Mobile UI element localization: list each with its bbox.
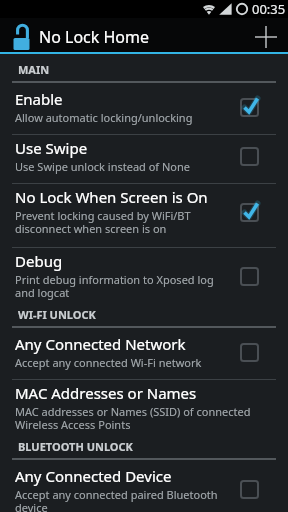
button[interactable] bbox=[244, 21, 288, 52]
button[interactable]: No Lock When Screen is On bbox=[0, 184, 288, 247]
staticText: MAC addresses or Names (SSID) of connect… bbox=[15, 404, 268, 433]
button[interactable]: Any Connected Network bbox=[0, 331, 288, 379]
staticText: MAIN bbox=[18, 62, 50, 77]
staticText: No Lock Home bbox=[39, 26, 149, 48]
staticText: Accept any connected Wi-Fi network bbox=[15, 355, 202, 370]
staticText: Accept any connected paired Bluetooth de… bbox=[15, 487, 232, 512]
staticText: Debug bbox=[15, 251, 63, 271]
staticText: Print debug information to Xposed log an… bbox=[15, 272, 232, 301]
staticText: No Lock When Screen is On bbox=[15, 187, 208, 207]
staticText: Allow automatic locking/unlocking bbox=[15, 110, 193, 125]
button[interactable]: No Lock Home bbox=[0, 18, 288, 52]
button[interactable]: Use Swipe bbox=[0, 135, 288, 183]
staticText: Enable bbox=[15, 89, 63, 109]
staticText: Any Connected Device bbox=[15, 466, 172, 486]
staticText: MAC Addresses or Names bbox=[15, 383, 197, 403]
staticText: Any Connected Network bbox=[15, 334, 186, 354]
button[interactable]: MAC Addresses or Names bbox=[0, 380, 288, 435]
staticText: Use Swipe bbox=[15, 138, 88, 158]
staticText: BLUETOOTH UNLOCK bbox=[18, 439, 133, 454]
button[interactable]: Any Connected Device bbox=[0, 463, 288, 512]
staticText: 00:35 bbox=[252, 0, 286, 18]
staticText: WI-FI UNLOCK bbox=[18, 307, 96, 322]
button[interactable]: Debug bbox=[0, 248, 288, 303]
button[interactable]: Enable bbox=[0, 86, 288, 134]
staticText: Use Swipe unlock instead of None bbox=[15, 159, 191, 174]
staticText: Prevent locking caused by WiFi/BT discon… bbox=[15, 208, 232, 237]
